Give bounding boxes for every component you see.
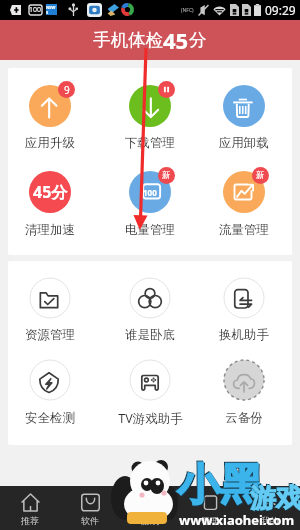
staticText: 清理加速 (25, 222, 75, 238)
staticText: 流量管理 (219, 222, 269, 238)
staticText: 游戏 (251, 483, 300, 516)
button[interactable] (214, 85, 274, 147)
button[interactable]: 管理 (180, 486, 240, 530)
button[interactable]: 游戏 (120, 486, 180, 530)
staticText: 分 (189, 29, 207, 51)
staticText: 换机助手 (219, 327, 269, 343)
button[interactable]: 新 (214, 171, 274, 233)
staticText: 9 (64, 83, 70, 97)
button[interactable] (120, 85, 180, 147)
button[interactable]: 推荐 (0, 486, 60, 530)
staticText: 小黑 (177, 458, 263, 512)
staticText: 管理 (201, 515, 219, 526)
staticText: www.xiaohei.com (179, 511, 295, 529)
staticText: 推荐 (21, 515, 39, 526)
button[interactable] (223, 277, 265, 319)
staticText: 我的 (261, 515, 279, 526)
staticText: 应用卸载 (219, 135, 269, 151)
staticText: (NFC) (181, 7, 194, 14)
staticText: 谁是卧底 (125, 327, 175, 343)
staticText: 云备份 (225, 410, 263, 426)
staticText: 100 (29, 5, 42, 15)
staticText: 新 (256, 170, 265, 181)
staticText: 安全检测 (25, 410, 75, 426)
staticText: TV游戏助手 (118, 410, 183, 426)
staticText: 资源管理 (25, 327, 75, 343)
button[interactable]: 9 (20, 85, 80, 147)
staticText: 软件 (81, 515, 99, 526)
button[interactable] (223, 359, 265, 401)
staticText: 游戏 (250, 482, 300, 515)
button[interactable] (129, 359, 171, 401)
staticText: 应用升级 (25, 135, 75, 151)
button[interactable] (29, 277, 71, 319)
staticText: 09:29 (265, 2, 296, 18)
staticText: 手机体检 (93, 29, 163, 51)
staticText: 下载管理 (125, 135, 175, 151)
staticText: 45分 (33, 181, 68, 203)
button[interactable]: 100 (120, 171, 180, 233)
staticText: 小黑 (178, 459, 264, 513)
button[interactable] (29, 359, 71, 401)
staticText: 游戏 (249, 481, 300, 514)
staticText: 45 (163, 25, 189, 55)
staticText: 小黑 (176, 457, 262, 511)
button[interactable]: 45分 (20, 171, 80, 233)
staticText: 电量管理 (125, 222, 175, 238)
staticText: 游戏 (141, 515, 159, 526)
staticText: 新 (162, 170, 171, 181)
button[interactable]: 我的 (240, 486, 300, 530)
button[interactable]: 软件 (60, 486, 120, 530)
staticText: 100 (143, 187, 157, 198)
staticText: NEWS (46, 5, 57, 15)
button[interactable] (129, 277, 171, 319)
